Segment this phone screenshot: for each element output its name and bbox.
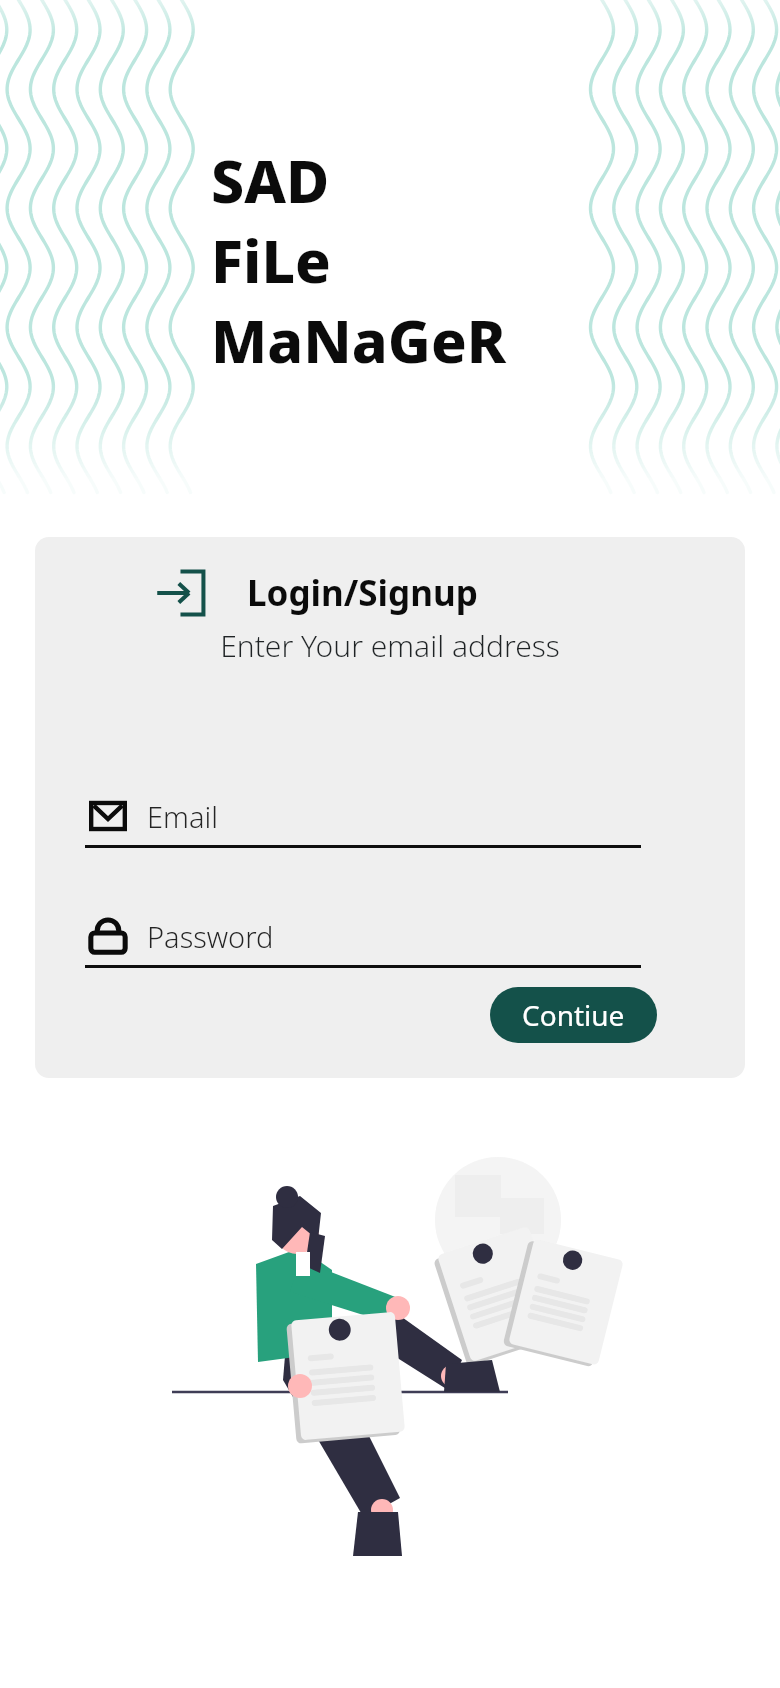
other: Login <box>155 565 211 621</box>
staticText: Enter Your email address <box>35 625 745 666</box>
button[interactable]: Email <box>85 793 641 848</box>
other: Password <box>85 913 131 959</box>
button[interactable]: Contiue <box>490 987 657 1043</box>
button[interactable]: Login <box>155 565 478 621</box>
other: Email <box>85 793 131 839</box>
button[interactable]: Password <box>85 913 641 968</box>
staticText: Password <box>147 917 274 956</box>
staticText: SAD <box>211 140 330 220</box>
staticText: MaNaGeR <box>211 300 507 380</box>
staticText: Contiue <box>522 996 625 1034</box>
staticText: FiLe <box>211 220 331 300</box>
staticText: Email <box>147 797 218 836</box>
staticText: Login/Signup <box>247 569 478 617</box>
